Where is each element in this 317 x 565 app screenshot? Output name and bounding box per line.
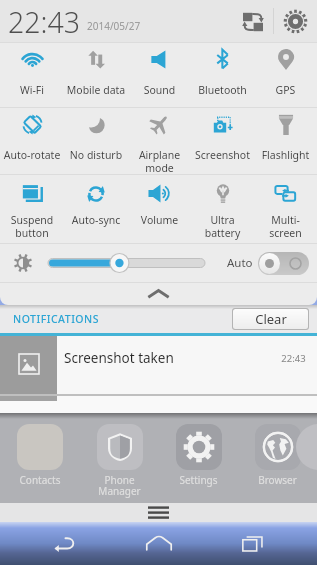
button[interactable]: Contacts — [0, 413, 80, 503]
button[interactable]: Ultra battery — [191, 175, 254, 243]
staticText: Ultra battery — [191, 213, 254, 240]
button[interactable]: Suspend button — [0, 175, 64, 243]
button[interactable]: Phone Manager — [80, 413, 159, 503]
button[interactable]: Mobile data — [64, 43, 128, 107]
staticText: Settings — [159, 473, 238, 487]
staticText: Contacts — [0, 473, 80, 487]
button[interactable]: Back — [37, 522, 93, 565]
staticText: Browser — [238, 473, 317, 487]
button[interactable]: Switch user — [233, 1, 273, 42]
staticText: Screenshot taken — [64, 349, 174, 367]
button[interactable]: Browser — [238, 413, 317, 503]
button[interactable]: Multi- screen — [254, 175, 317, 243]
button[interactable]: Auto — [227, 244, 309, 282]
button[interactable]: Collapse panel — [0, 283, 317, 305]
button[interactable]: Airplane mode — [128, 108, 191, 174]
staticText: Multi- screen — [254, 213, 317, 240]
button[interactable]: Wi-Fi — [0, 43, 64, 107]
button[interactable]: Volume — [128, 175, 191, 243]
staticText: Mobile data — [64, 83, 128, 97]
staticText: Auto-rotate — [0, 148, 64, 162]
staticText: 22:43 — [281, 352, 306, 365]
button[interactable]: Brightness — [48, 244, 205, 282]
staticText: Auto — [227, 255, 253, 271]
button[interactable]: Settings — [274, 1, 317, 42]
button[interactable]: No disturb — [64, 108, 128, 174]
button[interactable]: Sound — [128, 43, 191, 107]
button[interactable]: Auto-rotate — [0, 108, 64, 174]
staticText: NOTIFICATIONS — [13, 312, 100, 326]
button[interactable]: GPS — [254, 43, 317, 107]
button[interactable]: Bluetooth — [191, 43, 254, 107]
staticText: Suspend button — [0, 213, 64, 240]
staticText: Airplane mode — [128, 148, 191, 175]
staticText: 22:43 — [8, 3, 81, 42]
button[interactable]: Flashlight — [254, 108, 317, 174]
staticText: Wi-Fi — [0, 83, 64, 97]
staticText: Auto-sync — [64, 213, 128, 227]
button[interactable]: Screenshot taken — [0, 336, 317, 394]
staticText: Clear — [255, 310, 287, 328]
button[interactable]: Clear — [233, 309, 308, 329]
button[interactable]: Auto-sync — [64, 175, 128, 243]
button[interactable]: Settings — [159, 413, 238, 503]
staticText: Sound — [128, 83, 191, 97]
staticText: Volume — [128, 213, 191, 227]
staticText: Phone Manager — [80, 473, 159, 498]
button[interactable]: Recents — [224, 522, 280, 565]
button[interactable]: App drawer — [0, 503, 317, 522]
staticText: Flashlight — [254, 148, 317, 162]
staticText: 2014/05/27 — [87, 19, 141, 33]
staticText: No disturb — [64, 148, 128, 162]
staticText: Screenshot — [191, 148, 254, 162]
button[interactable] — [0, 396, 317, 413]
staticText: Bluetooth — [191, 83, 254, 97]
staticText: GPS — [254, 83, 317, 97]
button[interactable]: Home — [131, 522, 187, 565]
button[interactable]: Screenshot — [191, 108, 254, 174]
